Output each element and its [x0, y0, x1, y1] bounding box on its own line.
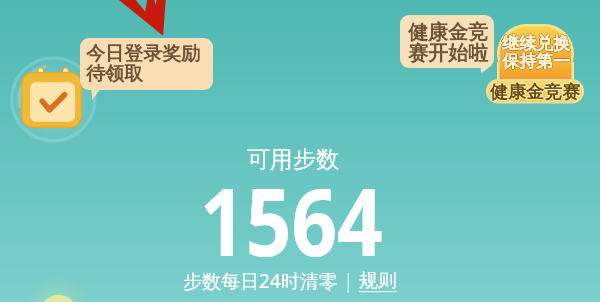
staticText: 保持第一 — [502, 50, 570, 71]
staticText: 继续兑换 — [502, 34, 570, 55]
staticText: 健康金竞赛 — [491, 81, 581, 104]
staticText: 待领取 — [86, 62, 143, 86]
staticText: 继续兑换 — [503, 33, 571, 54]
staticText: 保持第一 — [502, 52, 570, 73]
staticText: 1564 — [200, 156, 384, 284]
staticText: 健康金竞赛 — [490, 80, 580, 103]
staticText: 健康金竞 — [408, 20, 488, 45]
staticText: 继续兑换 — [501, 33, 569, 54]
other: 指示箭头 — [110, 0, 170, 38]
button[interactable]: 规则 — [359, 269, 397, 293]
button[interactable]: 签到日历 — [21, 67, 81, 128]
button[interactable]: 继续兑换 — [486, 24, 584, 103]
staticText: 保持第一 — [503, 51, 571, 72]
staticText: 保持第一 — [501, 51, 569, 72]
staticText: 继续兑换 — [502, 33, 570, 54]
button[interactable]: 今日登录奖励 — [80, 38, 213, 100]
staticText: 可用步数 — [247, 145, 339, 174]
staticText: 健康金竞赛 — [489, 81, 579, 104]
staticText: 保持第一 — [502, 51, 570, 72]
staticText: | — [343, 268, 354, 294]
button[interactable]: 健康金竞 — [400, 15, 494, 73]
staticText: 继续兑换 — [502, 32, 570, 53]
staticText: 今日登录奖励 — [86, 42, 200, 66]
staticText: 健康金竞赛 — [490, 81, 580, 104]
staticText: 健康金竞赛 — [490, 82, 580, 105]
staticText: 赛开始啦 — [408, 41, 488, 66]
staticText: 步数每日24时清零 — [183, 268, 338, 294]
